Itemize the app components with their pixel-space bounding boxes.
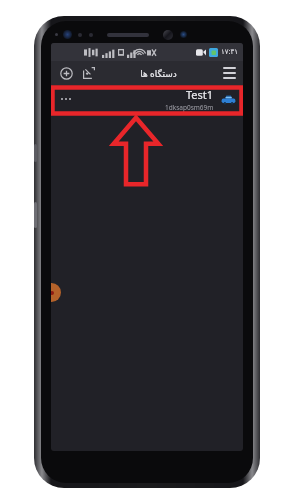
button[interactable]: More options <box>51 85 243 113</box>
staticText: ۱۷:۳۱ <box>221 47 238 57</box>
staticText: 1dksap0sm69m <box>165 103 214 112</box>
staticText: دستگاه ها <box>140 67 177 79</box>
button[interactable]: Scan <box>79 63 99 83</box>
button[interactable]: Menu <box>218 62 240 84</box>
button[interactable]: Add device <box>56 63 76 83</box>
button[interactable]: More options <box>57 90 75 108</box>
staticText: Test1 <box>186 87 214 102</box>
